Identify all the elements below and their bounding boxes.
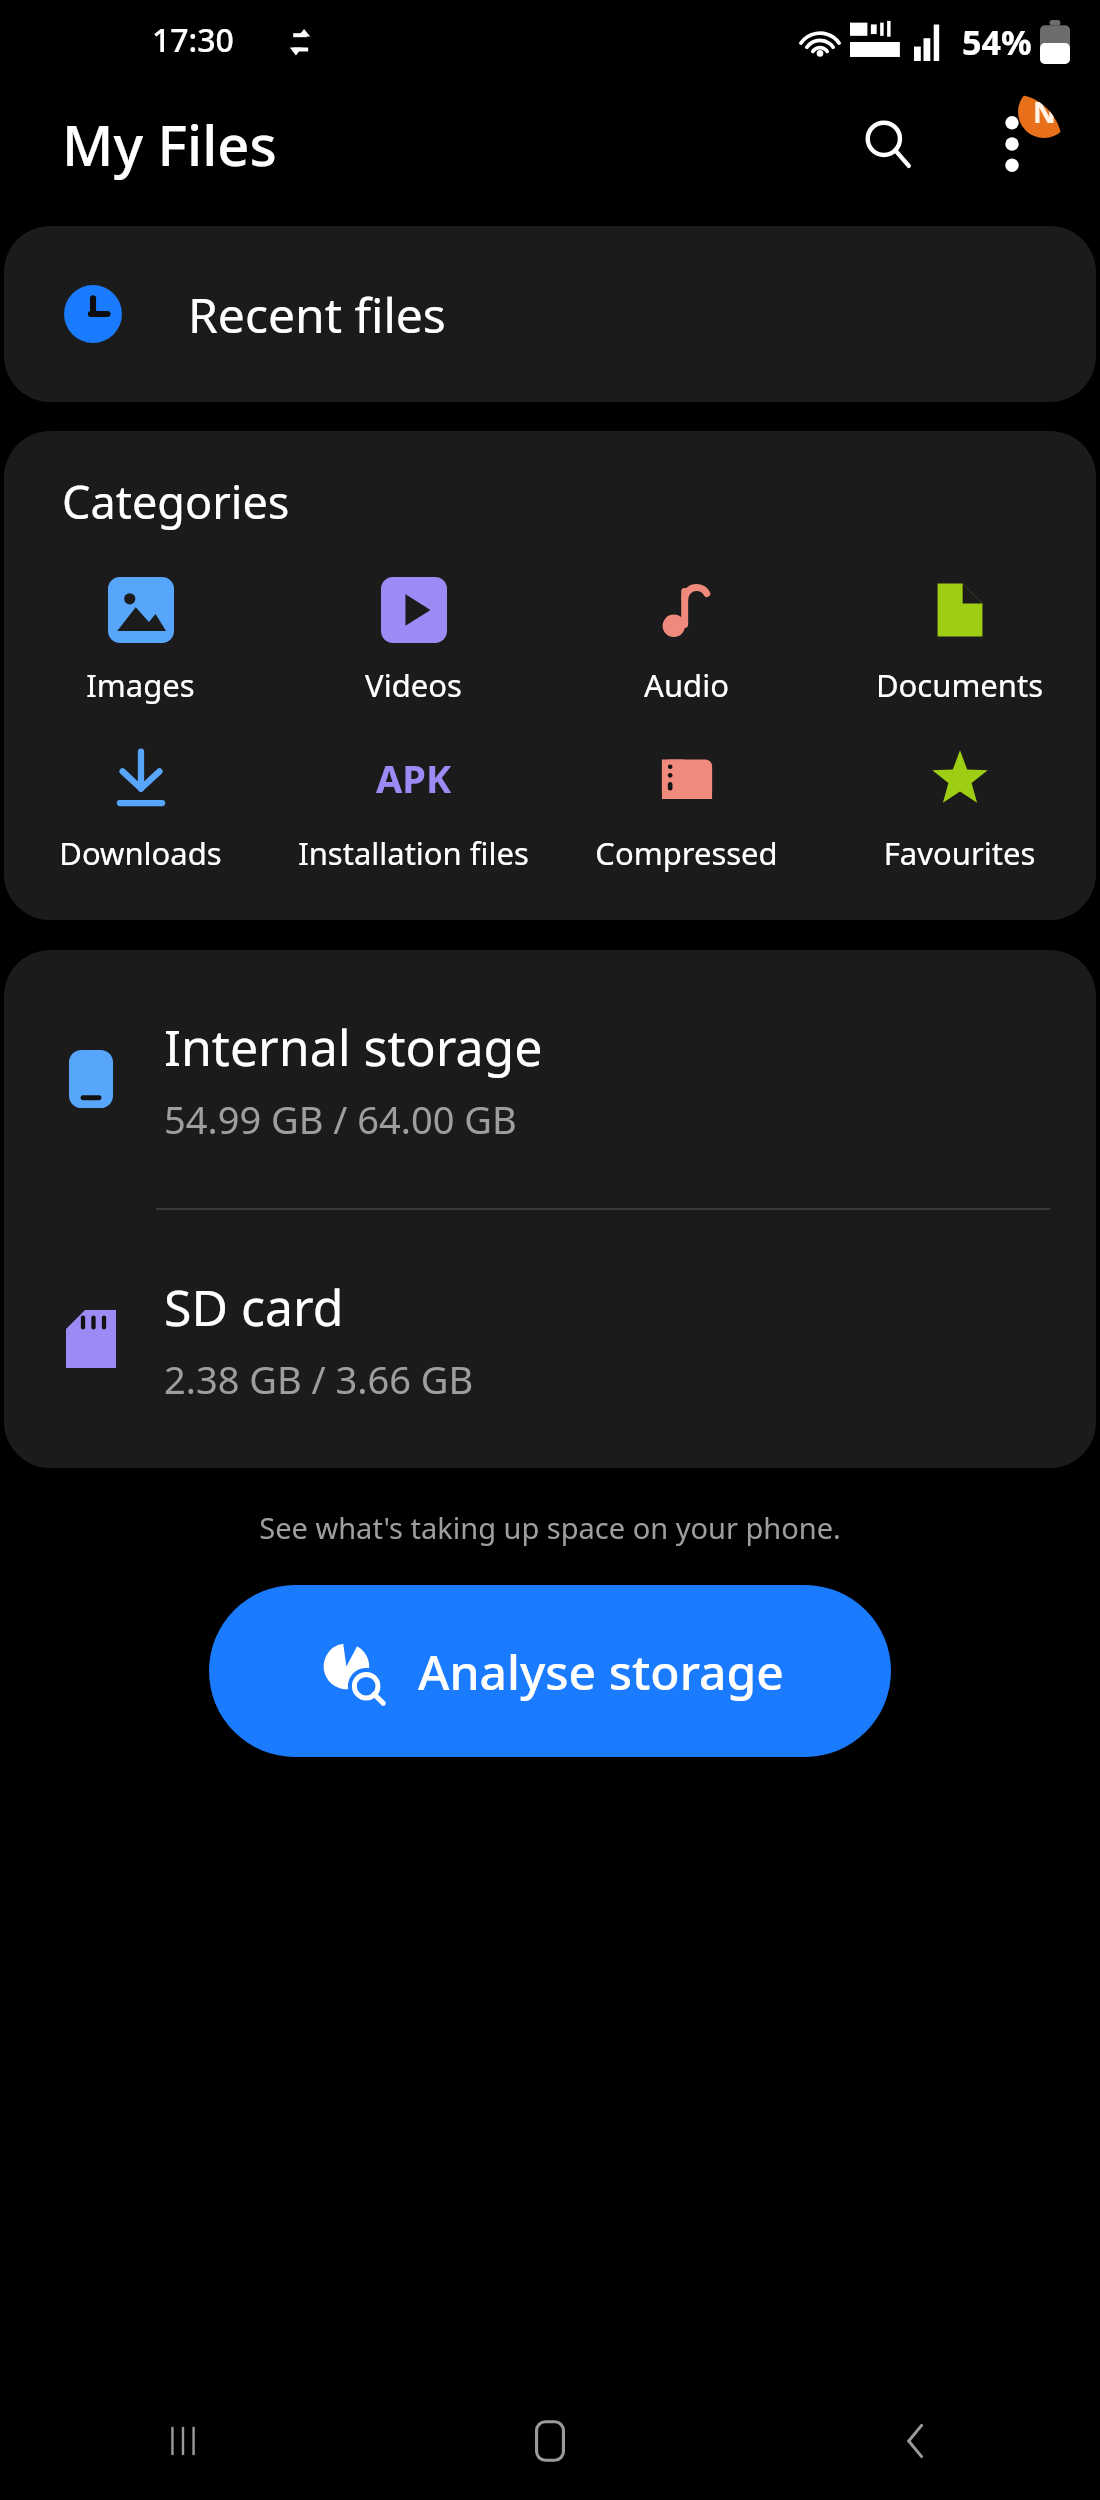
staticText: Internal storage	[164, 1013, 543, 1081]
button[interactable]: More options	[962, 94, 1062, 194]
button[interactable]: Audio	[550, 574, 823, 706]
staticText: See what's taking up space on your phone…	[0, 1508, 1100, 1547]
staticText: Documents	[827, 664, 1092, 706]
button[interactable]: Back	[733, 2382, 1100, 2500]
staticText: 54%	[962, 19, 1032, 65]
button[interactable]: Home	[366, 2382, 733, 2500]
button[interactable]: Downloads	[4, 742, 277, 874]
staticText: Favourites	[827, 832, 1092, 874]
staticText: Compressed	[554, 832, 819, 874]
staticText: Installation files	[281, 832, 546, 874]
staticText: N	[1033, 94, 1056, 131]
staticText: 17:30	[152, 18, 234, 62]
staticText: Categories	[62, 471, 290, 532]
button[interactable]: Documents	[823, 574, 1096, 706]
staticText: My Files	[62, 106, 277, 182]
button[interactable]: Videos	[277, 574, 550, 706]
button[interactable]: Internal storage	[4, 950, 1096, 1208]
staticText: Images	[8, 664, 273, 706]
staticText: Recent files	[188, 282, 446, 347]
button[interactable]: Compressed	[550, 742, 823, 874]
button[interactable]: Search	[838, 94, 938, 194]
button[interactable]: Images	[4, 574, 277, 706]
staticText: Videos	[281, 664, 546, 706]
button[interactable]: Recent apps	[0, 2382, 366, 2500]
button[interactable]: Recent files	[4, 226, 1096, 402]
button[interactable]: Favourites	[823, 742, 1096, 874]
button[interactable]: APK	[277, 742, 550, 874]
staticText: APK	[376, 752, 452, 804]
staticText: Downloads	[8, 832, 273, 874]
staticText: 2.38 GB / 3.66 GB	[164, 1353, 474, 1405]
staticText: SD card	[164, 1273, 344, 1341]
staticText: Analyse storage	[418, 1639, 784, 1704]
staticText: 54.99 GB / 64.00 GB	[164, 1093, 517, 1145]
button[interactable]: Analyse storage	[209, 1585, 891, 1757]
staticText: Audio	[554, 664, 819, 706]
button[interactable]: SD card	[4, 1210, 1096, 1468]
